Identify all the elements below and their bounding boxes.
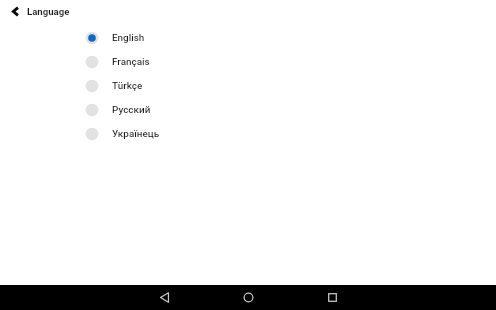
button[interactable]: Français [0, 50, 496, 74]
button[interactable]: Türkçe [0, 74, 496, 98]
staticText: Français [112, 56, 150, 68]
button[interactable]: Home [224, 285, 272, 310]
staticText: Türkçe [112, 80, 143, 92]
staticText: Українець [112, 128, 160, 140]
staticText: Русский [112, 104, 151, 116]
button[interactable]: Back [140, 285, 188, 310]
staticText: Language [27, 6, 70, 17]
button[interactable]: English [0, 26, 496, 50]
button[interactable]: Navigate up [0, 0, 23, 23]
staticText: English [112, 32, 145, 44]
button[interactable]: Recent apps [308, 285, 356, 310]
button[interactable]: Русский [0, 98, 496, 122]
button[interactable]: Українець [0, 122, 496, 146]
